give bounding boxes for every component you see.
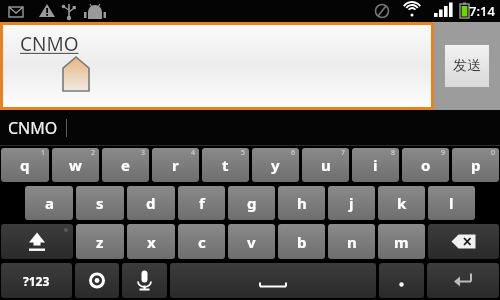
button[interactable]: h xyxy=(278,186,325,220)
button[interactable]: u xyxy=(302,148,349,182)
staticText: v xyxy=(247,232,256,252)
staticText: s xyxy=(96,193,104,213)
button[interactable]: Input method settings xyxy=(75,263,119,298)
button[interactable]: CNMO xyxy=(3,25,431,107)
button[interactable]: p xyxy=(452,148,499,182)
button[interactable]: n xyxy=(328,224,375,259)
staticText: 9 xyxy=(441,148,446,158)
staticText: j xyxy=(349,193,354,213)
button[interactable]: CNMO xyxy=(0,113,66,143)
staticText: 5 xyxy=(241,148,246,158)
staticText: CNMO xyxy=(8,117,58,139)
staticText: u xyxy=(321,155,331,175)
staticText: ?123 xyxy=(23,273,50,289)
staticText: b xyxy=(297,232,307,252)
staticText: x xyxy=(147,232,156,252)
button[interactable]: m xyxy=(378,224,425,259)
staticText: a xyxy=(45,193,54,213)
staticText: g xyxy=(247,193,257,213)
button[interactable]: c xyxy=(178,224,225,259)
staticText: 发送 xyxy=(453,57,481,75)
button[interactable]: Backspace xyxy=(428,224,499,259)
button[interactable]: s xyxy=(76,186,124,220)
button[interactable]: g xyxy=(228,186,275,220)
staticText: 1 xyxy=(41,148,46,158)
button[interactable]: x xyxy=(127,224,175,259)
button[interactable]: Enter xyxy=(427,263,499,298)
staticText: 7:14 xyxy=(469,2,495,20)
button[interactable]: v xyxy=(228,224,275,259)
staticText: t xyxy=(222,155,229,175)
button[interactable]: o xyxy=(402,148,449,182)
button[interactable]: d xyxy=(127,186,175,220)
staticText: w xyxy=(69,155,82,175)
staticText: e xyxy=(121,155,130,175)
button[interactable]: w xyxy=(52,148,99,182)
staticText: f xyxy=(199,193,205,213)
button[interactable]: f xyxy=(178,186,225,220)
staticText: 8 xyxy=(391,148,396,158)
staticText: c xyxy=(198,232,206,252)
staticText: q xyxy=(20,155,30,175)
button[interactable]: Space xyxy=(170,263,376,298)
button[interactable]: j xyxy=(328,186,375,220)
button[interactable]: t xyxy=(202,148,249,182)
staticText: p xyxy=(471,155,481,175)
staticText: l xyxy=(449,193,454,213)
staticText: r xyxy=(172,155,179,175)
staticText: d xyxy=(146,193,156,213)
button[interactable]: e xyxy=(102,148,149,182)
staticText: m xyxy=(394,232,409,252)
staticText: 2 xyxy=(91,148,96,158)
staticText: 4 xyxy=(191,148,196,158)
button[interactable]: q xyxy=(1,148,49,182)
button[interactable]: i xyxy=(352,148,399,182)
button[interactable]: y xyxy=(252,148,299,182)
staticText: z xyxy=(96,232,104,252)
staticText: 6 xyxy=(291,148,296,158)
button[interactable]: a xyxy=(25,186,73,220)
button[interactable]: l xyxy=(428,186,475,220)
button[interactable]: b xyxy=(278,224,325,259)
button[interactable]: z xyxy=(76,224,124,259)
button[interactable]: Period xyxy=(379,263,424,298)
staticText: CNMO xyxy=(20,31,79,57)
staticText: i xyxy=(373,155,378,175)
staticText: o xyxy=(421,155,431,175)
staticText: n xyxy=(347,232,357,252)
staticText: k xyxy=(397,193,407,213)
button[interactable]: ?123 xyxy=(1,263,72,298)
button[interactable]: Voice input xyxy=(122,263,167,298)
staticText: h xyxy=(297,193,307,213)
button[interactable]: k xyxy=(378,186,425,220)
button[interactable]: 发送 xyxy=(445,45,489,87)
staticText: y xyxy=(271,155,280,175)
button[interactable]: r xyxy=(152,148,199,182)
button[interactable]: Shift xyxy=(1,224,73,259)
staticText: 3 xyxy=(141,148,146,158)
staticText: 0 xyxy=(491,148,496,158)
staticText: 7 xyxy=(341,148,346,158)
